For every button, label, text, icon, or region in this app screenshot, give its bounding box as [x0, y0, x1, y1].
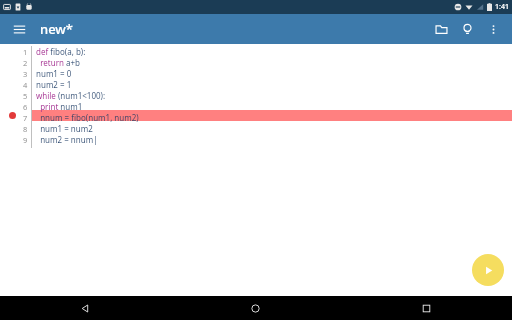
button[interactable]: Run — [472, 254, 504, 286]
staticText: 3 — [23, 69, 28, 79]
staticText: 2 — [23, 58, 28, 68]
staticText: 5 — [23, 91, 28, 101]
staticText: num1 = 0 — [36, 68, 72, 79]
staticText: num2 = 1 — [36, 79, 72, 90]
staticText: while (num1<100): — [36, 90, 106, 101]
button[interactable]: Hints — [454, 16, 480, 42]
staticText: 6 — [23, 102, 28, 112]
staticText: num1 = num2 — [36, 123, 93, 134]
staticText: new* — [40, 20, 73, 38]
staticText: num2 = nnum| — [36, 134, 98, 145]
button[interactable]: Back — [0, 296, 170, 320]
button[interactable]: 1 — [0, 44, 512, 296]
staticText: print num1 — [36, 101, 83, 112]
staticText: 9 — [23, 135, 28, 145]
staticText: 7 — [23, 113, 28, 123]
staticText: return a+b — [36, 57, 80, 68]
button[interactable]: Open file — [428, 16, 454, 42]
staticText: nnum = fibo(num1, num2) — [36, 112, 139, 123]
staticText: def fibo(a, b): — [36, 46, 86, 57]
staticText: 8 — [23, 124, 28, 134]
button[interactable]: More options — [480, 16, 506, 42]
button[interactable]: Navigation menu — [6, 16, 32, 42]
button[interactable]: Recents — [341, 296, 512, 320]
staticText: 1 — [23, 47, 28, 57]
staticText: 4 — [23, 80, 28, 90]
staticText: 1:41 — [495, 2, 509, 12]
button[interactable]: Home — [170, 296, 341, 320]
